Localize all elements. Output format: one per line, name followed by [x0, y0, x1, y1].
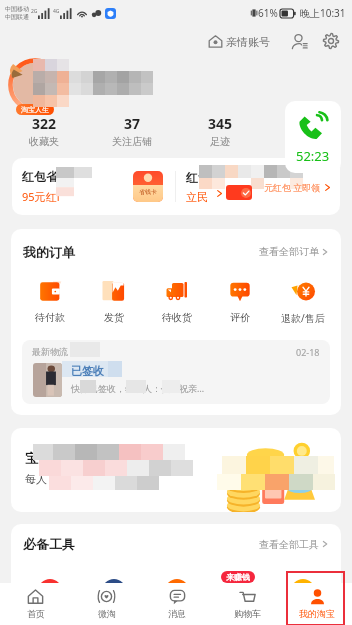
- staticText: 我的淘宝: [299, 608, 335, 619]
- staticText: 345: [208, 114, 233, 133]
- staticText: 2G: [31, 8, 38, 15]
- button[interactable]: 红包省: [12, 158, 175, 215]
- staticText: 来赚钱: [226, 572, 250, 582]
- staticText: 立民: [186, 190, 208, 204]
- button[interactable]: 消息: [142, 583, 212, 625]
- button[interactable]: 待付款: [18, 274, 82, 331]
- staticText: 中国联通: [5, 13, 29, 21]
- staticText: 中国移动: [5, 5, 29, 13]
- staticText: 购物车: [234, 608, 261, 619]
- button[interactable]: 宝: [11, 428, 341, 512]
- staticText: 评价: [230, 311, 250, 324]
- staticText: 已签收: [71, 364, 104, 378]
- staticText: 61%: [258, 6, 278, 20]
- button[interactable]: [145, 578, 208, 604]
- button[interactable]: 亲情账号: [205, 31, 273, 52]
- button[interactable]: 322: [0, 114, 88, 148]
- staticText: 02-18: [296, 346, 320, 358]
- staticText: 宝: [25, 450, 38, 466]
- button[interactable]: [271, 578, 334, 604]
- staticText: 待付款: [35, 311, 65, 324]
- button[interactable]: 345: [176, 114, 264, 148]
- button[interactable]: Contacts: [286, 28, 312, 54]
- staticText: 37: [124, 114, 141, 133]
- staticText: 最新物流: [32, 346, 68, 357]
- staticText: 消息: [168, 608, 186, 619]
- staticText: 快件已签收，签收人：代签祝亲…: [71, 382, 205, 394]
- button[interactable]: [208, 578, 271, 604]
- staticText: 查看全部订单: [259, 245, 319, 258]
- button[interactable]: 最新物流: [22, 340, 330, 404]
- button[interactable]: 红f: [176, 158, 340, 215]
- button[interactable]: [18, 578, 82, 604]
- button[interactable]: Settings: [318, 28, 344, 54]
- staticText: 我的订单: [23, 244, 75, 260]
- button[interactable]: Avatar: [8, 58, 62, 112]
- button[interactable]: 待收货: [145, 274, 208, 331]
- staticText: 亲情账号: [226, 35, 270, 49]
- staticText: 元红包 立即领: [264, 181, 321, 193]
- staticText: 322: [32, 114, 57, 133]
- button[interactable]: 我的淘宝: [282, 583, 352, 625]
- button[interactable]: 评价: [208, 274, 271, 331]
- staticText: 52:23: [296, 147, 330, 165]
- button[interactable]: 发货: [82, 274, 145, 331]
- staticText: 淘宝人生: [21, 105, 49, 114]
- staticText: 红包省: [22, 169, 58, 184]
- staticText: 95元红f: [22, 189, 61, 204]
- button[interactable]: 37: [88, 114, 176, 148]
- staticText: 4G: [53, 8, 60, 15]
- staticText: 查看全部工具: [259, 538, 319, 551]
- staticText: 微淘: [98, 608, 116, 619]
- staticText: 晚上10:31: [300, 6, 346, 20]
- staticText: 省钱卡: [139, 188, 157, 196]
- button[interactable]: 购物车: [212, 583, 282, 625]
- button[interactable]: 退款/售后: [271, 274, 334, 331]
- staticText: 发货: [104, 311, 124, 324]
- button[interactable]: 首页: [0, 583, 71, 625]
- staticText: 待收货: [162, 311, 192, 324]
- staticText: 红f: [186, 169, 203, 185]
- staticText: 必备工具: [23, 536, 75, 552]
- staticText: 收藏夹: [29, 135, 59, 148]
- staticText: 首页: [27, 608, 45, 619]
- button[interactable]: 我的订单: [11, 229, 341, 274]
- staticText: 足迹: [210, 135, 230, 148]
- button[interactable]: Call: [285, 101, 341, 173]
- staticText: 退款/售后: [281, 311, 325, 325]
- button[interactable]: 微淘: [71, 583, 142, 625]
- staticText: 每人: [25, 472, 47, 486]
- button[interactable]: [82, 578, 145, 604]
- staticText: 关注店铺: [112, 135, 152, 148]
- button[interactable]: 必备工具: [11, 524, 341, 564]
